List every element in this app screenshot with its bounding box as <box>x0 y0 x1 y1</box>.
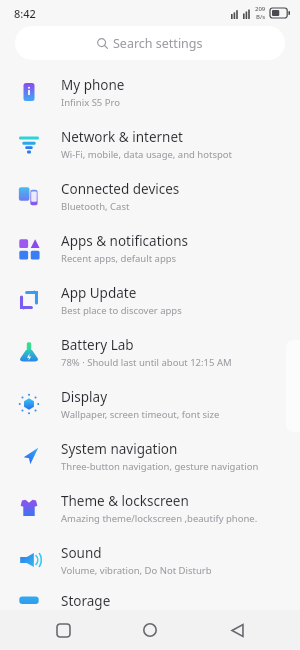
staticText: 78% · Should last until about 12:15 AM <box>61 356 232 369</box>
button[interactable]: Display <box>0 378 300 430</box>
button[interactable]: Network & internet <box>0 118 300 170</box>
staticText: Display <box>61 388 108 406</box>
staticText: System navigation <box>61 440 178 458</box>
button[interactable]: My phone <box>0 66 300 118</box>
staticText: Theme & lockscreen <box>61 492 189 510</box>
button[interactable]: System navigation <box>0 430 300 482</box>
staticText: Best place to discover apps <box>61 304 182 317</box>
staticText: Network & internet <box>61 128 183 146</box>
staticText: Infinix S5 Pro <box>61 96 120 109</box>
staticText: Recent apps, default apps <box>61 252 177 265</box>
staticText: 209 <box>255 5 266 13</box>
button[interactable]: Back <box>213 610 261 650</box>
staticText: Connected devices <box>61 180 180 198</box>
staticText: B/s <box>256 13 266 21</box>
button[interactable]: Home <box>126 610 174 650</box>
staticText: Battery Lab <box>61 336 134 354</box>
staticText: App Update <box>61 284 137 302</box>
button[interactable]: Sound <box>0 534 300 586</box>
staticText: Sound <box>61 544 102 562</box>
staticText: Wi-Fi, mobile, data usage, and hotspot <box>61 148 232 161</box>
staticText: Apps & notifications <box>61 232 188 250</box>
staticText: Volume, vibration, Do Not Disturb <box>61 564 212 577</box>
button[interactable]: Recents <box>39 610 87 650</box>
staticText: Bluetooth, Cast <box>61 200 130 213</box>
button[interactable]: App Update <box>0 274 300 326</box>
staticText: Wallpaper, screen timeout, font size <box>61 408 220 421</box>
button[interactable]: Apps & notifications <box>0 222 300 274</box>
button[interactable]: Theme & lockscreen <box>0 482 300 534</box>
staticText: Storage <box>61 592 111 610</box>
button[interactable]: Storage <box>0 586 300 616</box>
staticText: 8:42 <box>14 6 36 21</box>
button[interactable]: Connected devices <box>0 170 300 222</box>
button[interactable]: Search settings <box>15 26 285 60</box>
button[interactable]: Battery Lab <box>0 326 300 378</box>
staticText: Search settings <box>113 35 203 52</box>
staticText: Amazing theme/lockscreen ,beautify phone… <box>61 512 258 525</box>
staticText: Three-button navigation, gesture navigat… <box>61 460 259 473</box>
staticText: My phone <box>61 76 125 94</box>
